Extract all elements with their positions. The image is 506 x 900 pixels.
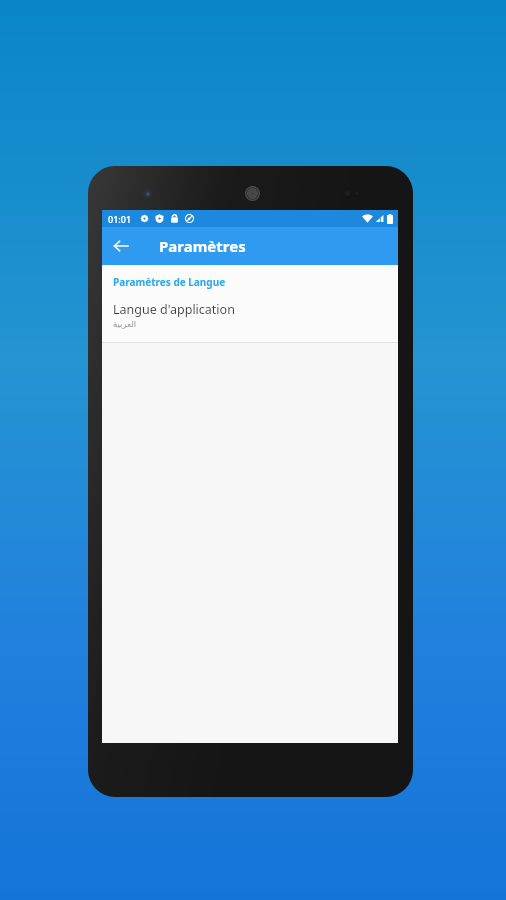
staticText: 01:01	[108, 213, 132, 225]
staticText: Paramètres de Langue	[113, 275, 226, 289]
staticText: Langue d'application	[113, 301, 235, 318]
button[interactable]: Back	[102, 227, 140, 265]
staticText: العربية	[113, 319, 137, 329]
staticText: Paramètres	[159, 236, 246, 256]
button[interactable]: Langue d'application	[102, 301, 398, 342]
